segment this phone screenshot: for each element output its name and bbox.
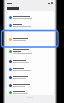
button[interactable]: Directions xyxy=(7,73,54,81)
button[interactable]: Health and safety xyxy=(7,46,54,57)
button[interactable]: Reserve a table xyxy=(7,89,54,95)
button[interactable]: Menu xyxy=(7,81,54,89)
button[interactable]: Opening hours xyxy=(7,13,54,21)
button[interactable]: Website xyxy=(7,65,54,73)
button[interactable]: Add a review xyxy=(7,35,54,44)
button[interactable]: Order online xyxy=(7,57,54,65)
button[interactable]: Phone number xyxy=(7,21,54,29)
